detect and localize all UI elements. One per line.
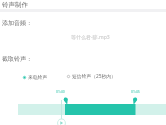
staticText: 来电铃声 [28, 74, 48, 80]
staticText: 铃声制作 [2, 1, 28, 9]
button[interactable]: 铃声制作 [0, 0, 166, 9]
staticText: 短信铃声（25秒内） [72, 73, 116, 80]
staticText: 01:45 [131, 89, 140, 94]
staticText: 截取铃声： [2, 55, 32, 63]
staticText: 添加音频： [2, 19, 32, 27]
staticText: 01:40 [56, 89, 65, 94]
button[interactable]: 短信铃声（25秒内） [67, 73, 116, 80]
button[interactable]: 来电铃声 [23, 74, 48, 80]
staticText: 等什么君-辞.mp3 [71, 34, 110, 41]
